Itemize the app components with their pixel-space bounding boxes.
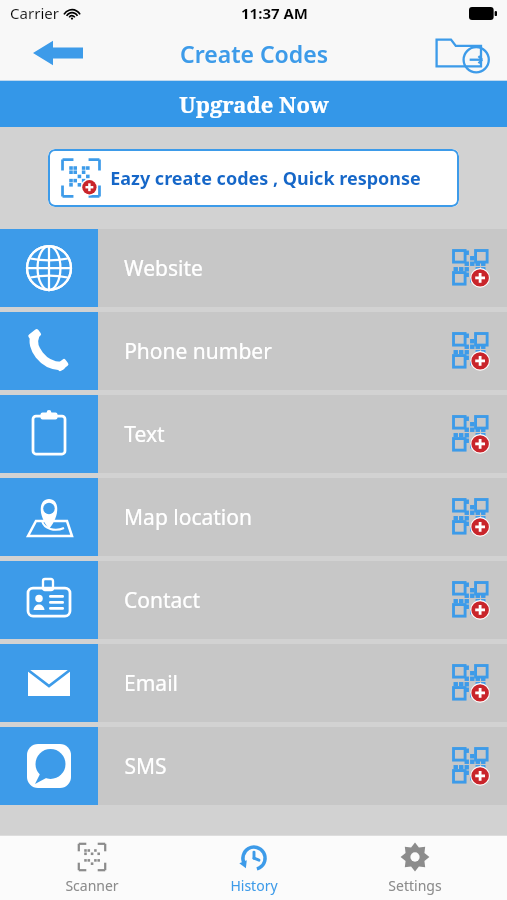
staticText: Upgrade Now [179,89,329,119]
button[interactable]: Export folder [431,30,495,76]
staticText: Eazy create codes , Quick response [110,166,421,191]
staticText: Email [124,669,178,698]
button[interactable]: Scanner [22,836,162,900]
button[interactable]: Upgrade Now [0,81,507,127]
button[interactable]: Email [0,644,507,722]
staticText: 11:37 AM [241,3,308,23]
staticText: Website [124,254,203,283]
staticText: Phone number [124,337,272,366]
button[interactable]: Website [0,229,507,307]
button[interactable]: Eazy create codes , Quick response [48,149,459,207]
staticText: Scanner [65,876,119,895]
staticText: SMS [124,752,167,781]
button[interactable]: Phone number [0,312,507,390]
button[interactable]: Text [0,395,507,473]
button[interactable]: SMS [0,727,507,805]
button[interactable]: Contact [0,561,507,639]
staticText: Create Codes [180,38,328,69]
staticText: Contact [124,586,200,615]
button[interactable]: Settings [345,836,485,900]
button[interactable]: Back [30,33,86,73]
button[interactable]: Create Codes [180,38,328,69]
staticText: History [230,876,278,895]
button[interactable]: History [184,836,324,900]
staticText: Settings [388,876,442,895]
staticText: Text [124,420,165,449]
staticText: Carrier [10,3,59,23]
staticText: Map location [124,503,252,532]
button[interactable]: Map location [0,478,507,556]
